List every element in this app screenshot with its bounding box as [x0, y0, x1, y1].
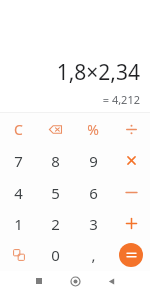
button[interactable]: Six — [74, 178, 112, 207]
button[interactable]: Multiply — [112, 146, 150, 175]
staticText: 4 — [14, 183, 23, 203]
button[interactable]: Nine — [74, 146, 112, 175]
button[interactable]: Zero — [37, 240, 74, 269]
staticText: 7 — [14, 151, 23, 171]
button[interactable]: Three — [74, 209, 112, 238]
button[interactable]: Unit converter — [0, 240, 37, 269]
staticText: 9 — [89, 151, 98, 171]
button[interactable]: Recents — [21, 271, 57, 291]
staticText: 2 — [51, 214, 60, 234]
staticText: 3 — [89, 214, 98, 234]
staticText: % — [87, 120, 99, 139]
button[interactable]: Backspace — [37, 115, 74, 144]
button[interactable]: Divide — [112, 115, 150, 144]
button[interactable]: Four — [0, 178, 37, 207]
button[interactable]: Clear — [0, 115, 37, 144]
button[interactable]: Eight — [37, 146, 74, 175]
button[interactable]: Seven — [0, 146, 37, 175]
button[interactable]: Two — [37, 209, 74, 238]
staticText: 1,8×2,34 — [56, 58, 140, 87]
button[interactable]: One — [0, 209, 37, 238]
staticText: 8 — [51, 151, 60, 171]
button[interactable]: Minus — [112, 178, 150, 207]
button[interactable]: Five — [37, 178, 74, 207]
staticText: C — [14, 120, 23, 139]
button[interactable]: Decimal comma — [74, 240, 112, 269]
button[interactable]: Home — [57, 271, 93, 291]
button[interactable]: Back — [93, 271, 129, 291]
button[interactable]: Equals — [112, 240, 150, 269]
staticText: 0 — [51, 245, 60, 265]
staticText: = 4,212 — [102, 92, 140, 107]
staticText: 1 — [14, 214, 23, 234]
staticText: 6 — [89, 183, 98, 203]
button[interactable]: Percent — [74, 115, 112, 144]
staticText: , — [91, 245, 96, 265]
button[interactable]: Plus — [112, 209, 150, 238]
staticText: 5 — [51, 183, 60, 203]
